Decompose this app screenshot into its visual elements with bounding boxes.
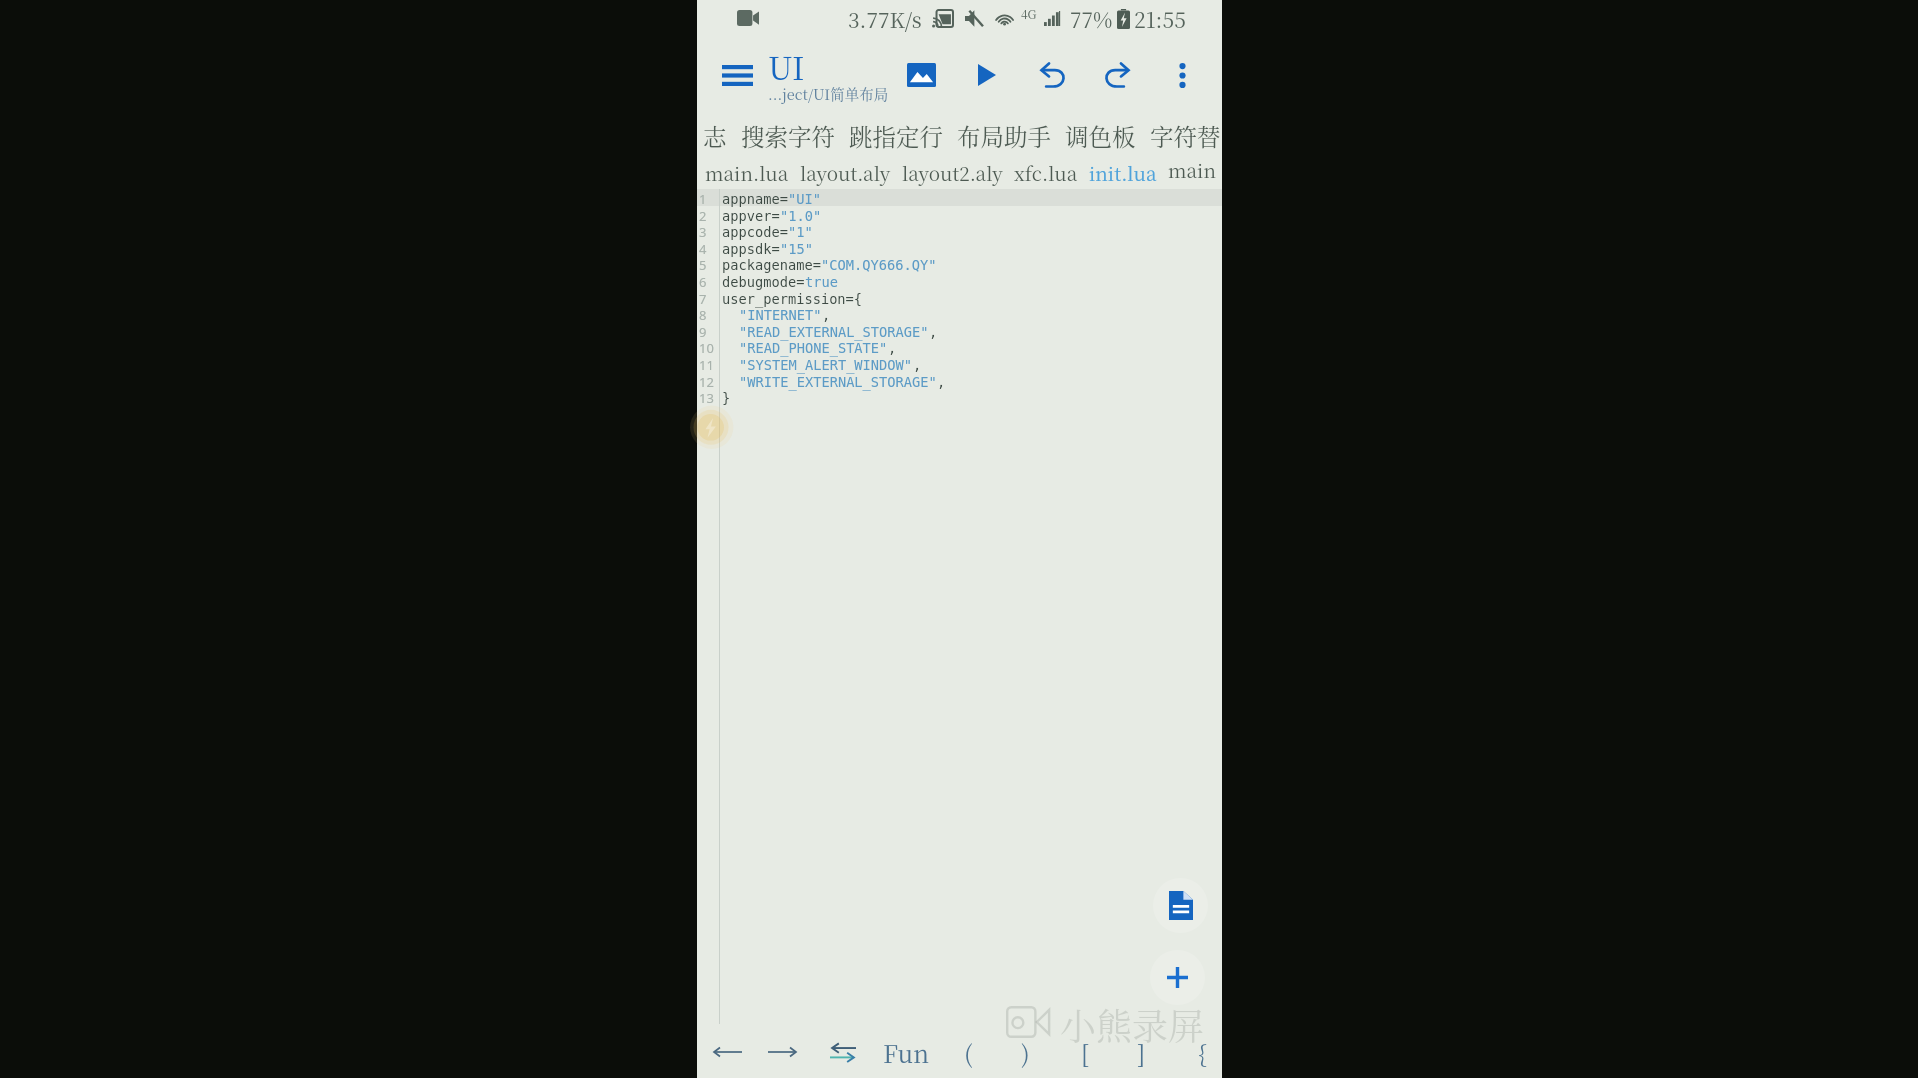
staticText: , (888, 340, 897, 356)
staticText: UI (768, 44, 805, 89)
staticText: } (722, 390, 731, 406)
button[interactable]: Insert image (895, 47, 947, 103)
staticText: 8 (699, 306, 707, 323)
staticText: 1 (699, 190, 707, 207)
button[interactable]: ) (1000, 1030, 1050, 1074)
staticText: "COM.QY666.QY" (821, 257, 937, 273)
button[interactable]: [ (1060, 1030, 1110, 1074)
staticText: debugmode= (722, 274, 805, 290)
button[interactable]: init.lua (1078, 159, 1157, 186)
staticText: appsdk= (722, 241, 780, 257)
button[interactable]: layout.aly (789, 159, 891, 186)
staticText: "READ_PHONE_STATE" (739, 340, 888, 356)
staticText: 13 (699, 389, 714, 406)
staticText: 小熊录屏 (1060, 999, 1205, 1051)
staticText: 搜索字符 (741, 119, 835, 151)
staticText: 2 (699, 207, 707, 224)
button[interactable]: Move right (757, 1030, 807, 1074)
button[interactable]: Redo (1091, 47, 1143, 103)
staticText: 字符替换 (1150, 119, 1223, 151)
staticText: 跳指定行 (849, 119, 943, 151)
button[interactable]: { (1177, 1030, 1227, 1074)
button[interactable]: main2 (1157, 156, 1223, 188)
staticText: appname= (722, 191, 788, 207)
staticText: { (1198, 1035, 1207, 1069)
staticText: 4 (699, 240, 707, 257)
staticText: appver= (722, 208, 780, 224)
staticText: 7 (699, 290, 707, 307)
button[interactable]: main.lua (698, 159, 789, 186)
staticText: 12 (699, 373, 714, 390)
staticText: main2 (1168, 156, 1223, 188)
staticText: appcode= (722, 224, 788, 240)
staticText: layout2.aly (902, 159, 1003, 186)
staticText: 10 (699, 339, 714, 356)
staticText: 9 (699, 323, 707, 340)
button[interactable]: 志 (698, 119, 727, 151)
button[interactable]: 跳指定行 (835, 119, 943, 151)
button[interactable]: Quick run (697, 401, 732, 448)
staticText: 5 (699, 256, 707, 273)
staticText: "READ_EXTERNAL_STORAGE" (739, 324, 929, 340)
staticText: layout.aly (800, 159, 891, 186)
button[interactable]: Swap lines (818, 1030, 868, 1074)
button[interactable]: 搜索字符 (727, 119, 835, 151)
button[interactable]: 调色板 (1051, 119, 1136, 151)
staticText: 调色板 (1065, 119, 1136, 151)
staticText: 11 (699, 356, 714, 373)
button[interactable]: xfc.lua (1003, 159, 1078, 186)
staticText: "WRITE_EXTERNAL_STORAGE" (739, 374, 937, 390)
staticText: 4G (1021, 5, 1037, 22)
staticText: 21:55 (1134, 4, 1186, 34)
staticText: ) (1021, 1035, 1030, 1069)
staticText: Fun (883, 1035, 930, 1069)
button[interactable]: Run (961, 47, 1013, 103)
staticText: "INTERNET" (739, 307, 822, 323)
staticText: "15" (780, 241, 813, 257)
staticText: "UI" (788, 191, 821, 207)
staticText: main.lua (705, 159, 789, 186)
staticText: "1.0" (780, 208, 822, 224)
staticText: 77% (1070, 4, 1113, 34)
staticText: 3.77K/s (848, 4, 922, 34)
staticText: ] (1137, 1035, 1146, 1069)
staticText: 6 (699, 273, 707, 290)
button[interactable]: More options (1159, 47, 1205, 103)
staticText: 3 (699, 223, 707, 240)
staticText: , (822, 307, 831, 323)
staticText: "1" (788, 224, 813, 240)
button[interactable]: Fun (881, 1030, 931, 1074)
staticText: ...ject/UI简单布局 (768, 83, 889, 104)
button[interactable]: layout2.aly (891, 159, 1003, 186)
staticText: , (913, 357, 922, 373)
staticText: xfc.lua (1014, 159, 1078, 186)
staticText: [ (1081, 1035, 1090, 1069)
staticText: , (937, 374, 946, 390)
button[interactable]: Add (1150, 950, 1205, 1005)
staticText: packagename= (722, 257, 821, 273)
staticText: "SYSTEM_ALERT_WINDOW" (739, 357, 913, 373)
staticText: , (929, 324, 938, 340)
button[interactable]: Menu (711, 47, 763, 103)
staticText: ( (964, 1035, 973, 1069)
staticText: user_permission={ (722, 291, 863, 307)
staticText: init.lua (1089, 159, 1157, 186)
button[interactable]: New file (1153, 878, 1208, 933)
button[interactable]: 布局助手 (943, 119, 1051, 151)
button[interactable]: ( (943, 1030, 993, 1074)
staticText: 志 (703, 119, 727, 151)
staticText: 布局助手 (957, 119, 1051, 151)
staticText: true (805, 274, 838, 290)
button[interactable]: Move left (703, 1030, 753, 1074)
button[interactable]: Undo (1026, 47, 1078, 103)
button[interactable]: 字符替换 (1136, 119, 1223, 151)
button[interactable]: ] (1116, 1030, 1166, 1074)
